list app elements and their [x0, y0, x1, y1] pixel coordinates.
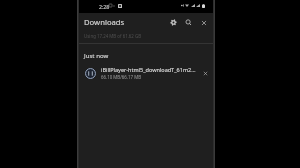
staticText: Just now [84, 51, 109, 59]
staticText: Downloads [84, 17, 125, 27]
staticText: 2:28 [99, 3, 110, 10]
staticText: 66.10 MB/66.17 MB [101, 74, 142, 80]
button[interactable]: Close [197, 16, 210, 29]
button[interactable]: Cancel download [200, 68, 211, 79]
button[interactable]: Pause download [85, 68, 96, 79]
button[interactable]: Settings [167, 16, 180, 29]
staticText: Using 17.24 MB of 61.62 GB [84, 33, 142, 39]
button[interactable]: Pause download [77, 62, 215, 83]
staticText: iBillPlayer-html5_downloadT_61m2… [101, 66, 196, 73]
button[interactable]: Search [182, 16, 195, 29]
